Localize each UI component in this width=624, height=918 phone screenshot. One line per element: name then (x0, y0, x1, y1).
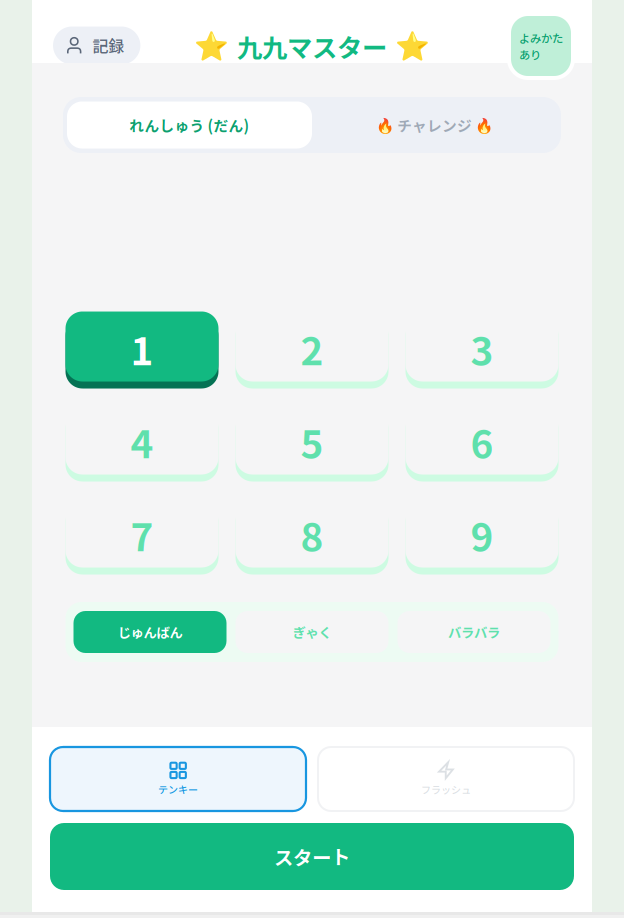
button[interactable]: 記録 (53, 26, 140, 64)
button[interactable]: テンキー (50, 747, 306, 811)
button[interactable]: 3 (405, 308, 558, 385)
staticText: 九九マスター (237, 28, 387, 65)
staticText: 4 (130, 413, 153, 469)
button[interactable]: 8 (235, 494, 388, 571)
staticText: テンキー (158, 782, 198, 796)
staticText: じゅんばん (117, 622, 182, 642)
staticText: ⭐ (194, 30, 229, 63)
staticText: バラバラ (448, 622, 500, 642)
button[interactable]: じゅんばん (73, 602, 226, 662)
staticText: フラッシュ (421, 782, 471, 797)
staticText: 5 (300, 413, 323, 469)
button[interactable]: ぎゃく (235, 602, 388, 662)
button[interactable]: 7 (65, 494, 218, 571)
button[interactable]: バラバラ (397, 602, 550, 662)
staticText: 7 (130, 506, 153, 562)
button[interactable]: れんしゅう (だん) (67, 101, 312, 148)
button[interactable]: 4 (65, 401, 218, 478)
staticText: 6 (470, 413, 493, 469)
staticText: 3 (470, 320, 493, 376)
staticText: 9 (470, 506, 493, 562)
button[interactable]: 6 (405, 401, 558, 478)
staticText: 1 (130, 320, 153, 376)
staticText: 2 (300, 320, 323, 376)
staticText: 記録 (92, 34, 124, 57)
staticText: ぎゃく (292, 622, 331, 642)
button[interactable]: 1 (65, 308, 218, 385)
staticText: よみかた あり (519, 30, 563, 62)
button[interactable]: 5 (235, 401, 388, 478)
button[interactable]: 9 (405, 494, 558, 571)
button[interactable]: よみかた あり (507, 12, 575, 80)
button[interactable]: 🔥 チャレンジ 🔥 (312, 101, 557, 148)
button[interactable]: スタート (50, 823, 574, 890)
staticText: 🔥 チャレンジ 🔥 (376, 114, 493, 136)
staticText: 8 (300, 506, 323, 562)
staticText: ⭐ (395, 30, 430, 63)
button[interactable]: 2 (235, 308, 388, 385)
staticText: れんしゅう (だん) (129, 114, 249, 136)
staticText: スタート (274, 842, 350, 870)
button[interactable]: フラッシュ (318, 747, 574, 811)
